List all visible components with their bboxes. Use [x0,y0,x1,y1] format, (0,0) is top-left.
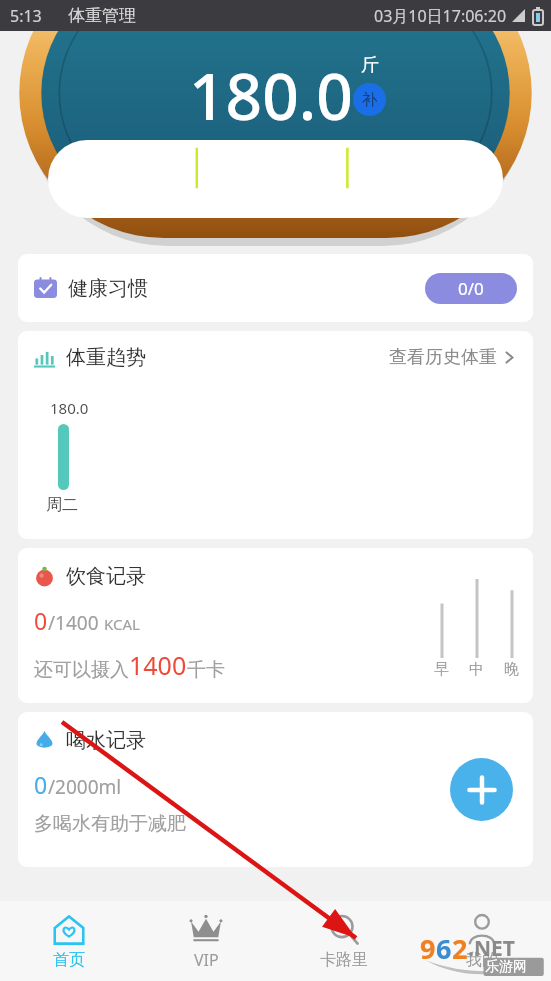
button[interactable]: 补记体重 [353,83,386,116]
staticText: 中 [469,660,484,679]
staticText: KCAL [104,614,140,634]
staticText: 晚 [504,660,519,679]
staticText: 0/0 [458,277,484,300]
button[interactable]: 饮食记录 [18,548,533,703]
staticText: 0 [34,769,48,800]
staticText: 早 [434,660,449,679]
staticText: /2000ml [48,774,122,800]
staticText: 多喝水有助于减肥 [34,812,186,836]
staticText: 180.0 [189,52,353,139]
staticText: 9 [420,930,436,967]
staticText: 6 [436,930,452,967]
staticText: 180.0 [50,398,89,418]
button[interactable]: 晚 [504,564,519,679]
staticText: 03月10日17:06:20 [374,5,507,27]
staticText: 5:13 [10,5,42,27]
button[interactable]: 中 [469,564,484,679]
staticText: .NET [468,934,515,963]
staticText: 体重管理 [68,5,136,26]
staticText: /1400 [48,610,104,636]
staticText: 我的 [466,950,498,970]
button[interactable]: 首页 [0,901,137,981]
staticText: 斤 [361,54,379,77]
button[interactable]: 体重趋势 [18,331,533,539]
staticText: 饮食记录 [66,564,146,589]
staticText: VIP [194,949,219,971]
button[interactable]: 我的 [413,901,551,981]
button[interactable] [48,140,503,218]
button[interactable]: 查看历史体重 [389,346,517,369]
staticText: 千卡 [187,658,225,682]
button[interactable]: 添加喝水记录 [450,758,513,821]
staticText: 周二 [46,495,78,515]
staticText: 首页 [53,950,85,970]
staticText: 健康习惯 [68,276,148,301]
button[interactable]: 健康习惯 [18,254,533,322]
staticText: 体重趋势 [66,345,146,370]
button[interactable]: 卡路里 [275,901,413,981]
button[interactable]: VIP [137,901,275,981]
staticText: 乐游网 [485,958,527,976]
staticText: 卡路里 [320,950,368,970]
staticText: 2 [452,930,468,967]
staticText: 1400 [129,648,187,682]
button[interactable]: 0/0 [425,273,517,304]
staticText: 喝水记录 [66,728,146,753]
staticText: 查看历史体重 [389,346,497,369]
staticText: 补 [362,90,378,110]
button[interactable]: 喝水记录 [18,712,533,867]
staticText: 还可以摄入 [34,658,129,682]
staticText: 0 [34,605,48,636]
button[interactable]: 早 [434,564,449,679]
